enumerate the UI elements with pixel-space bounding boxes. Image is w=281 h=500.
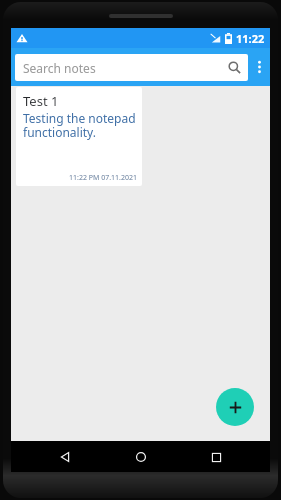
staticText: Testing the notepad functionality. bbox=[23, 110, 137, 141]
button[interactable]: Back bbox=[44, 443, 86, 471]
staticText: Test 1 bbox=[23, 92, 59, 110]
staticText: 11:22 PM 07.11.2021 bbox=[69, 173, 137, 183]
button[interactable]: More options bbox=[248, 48, 270, 86]
button[interactable]: Search notes bbox=[15, 54, 248, 81]
button[interactable]: Test 1 bbox=[16, 87, 142, 186]
button[interactable]: Add note bbox=[216, 388, 254, 426]
button[interactable]: Recent apps bbox=[195, 443, 237, 471]
staticText: Search notes bbox=[23, 60, 228, 76]
staticText: 11:22 bbox=[236, 31, 265, 46]
button[interactable]: Home bbox=[120, 443, 162, 471]
